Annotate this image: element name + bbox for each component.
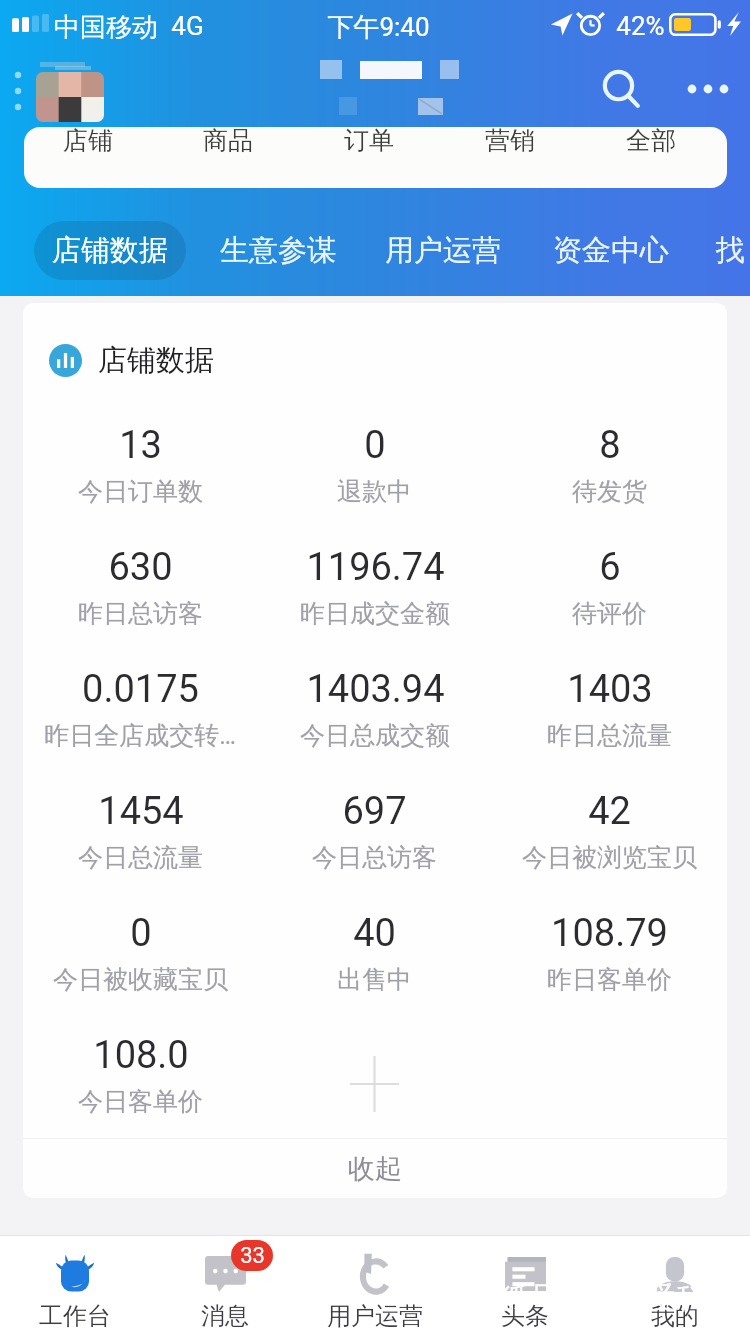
button[interactable]: 1454 <box>23 789 257 910</box>
staticText: 今日总访客 <box>312 842 437 873</box>
staticText: 搜狐号@思阳爱科技 <box>469 1279 736 1317</box>
staticText: 昨日成交金额 <box>300 598 450 629</box>
button[interactable]: 营销 <box>439 127 580 188</box>
staticText: 8 <box>599 423 621 468</box>
staticText: 42% <box>616 11 665 41</box>
button[interactable]: 店铺数据 <box>34 221 186 280</box>
button[interactable]: 40 <box>257 911 492 1032</box>
staticText: 营销 <box>485 127 535 156</box>
staticText: 42 <box>588 789 631 834</box>
staticText: 订单 <box>344 127 394 156</box>
staticText: 1454 <box>98 789 184 834</box>
staticText: 40 <box>353 911 396 956</box>
staticText: 商品 <box>203 127 253 156</box>
staticText: 用户运营 <box>385 232 501 269</box>
staticText: 今日被浏览宝贝 <box>522 842 697 873</box>
staticText: 昨日总流量 <box>547 720 672 751</box>
button[interactable]: 0 <box>257 423 492 544</box>
button[interactable]: 697 <box>257 789 492 910</box>
button[interactable]: 42 <box>492 789 727 910</box>
button[interactable]: 店铺数据 <box>49 340 214 380</box>
button[interactable]: 1403.94 <box>257 667 492 788</box>
staticText: 店铺 <box>63 127 113 156</box>
button[interactable]: 用户运营 <box>300 1236 450 1334</box>
button[interactable] <box>257 1033 492 1154</box>
button[interactable]: 店铺 <box>24 127 158 188</box>
staticText: 下午9:40 <box>327 11 430 44</box>
staticText: 待评价 <box>572 598 647 629</box>
staticText: 用户运营 <box>327 1301 423 1331</box>
button[interactable]: More options <box>676 59 736 119</box>
staticText: 6 <box>599 545 621 590</box>
button[interactable]: 收起 <box>23 1139 727 1198</box>
staticText: 1196.74 <box>306 545 445 590</box>
button[interactable]: Search <box>590 58 654 122</box>
staticText: 消息 <box>201 1301 249 1331</box>
staticText: 1403.94 <box>306 667 445 712</box>
staticText: 昨日全店成交转… <box>44 720 236 751</box>
staticText: 108.0 <box>93 1033 189 1078</box>
staticText: 中国移动 <box>54 11 158 44</box>
staticText: 资金中心 <box>553 232 669 269</box>
button[interactable]: Shop avatar <box>36 72 104 122</box>
staticText: 1403 <box>567 667 653 712</box>
staticText: 我的 <box>651 1301 699 1331</box>
button[interactable]: 找 <box>716 221 750 280</box>
staticText: 108.79 <box>551 911 668 956</box>
staticText: 4G <box>171 11 204 41</box>
staticText: 13 <box>119 423 162 468</box>
button[interactable]: 0.0175 <box>23 667 257 788</box>
staticText: 找 <box>716 232 745 269</box>
staticText: 收起 <box>348 1152 402 1186</box>
staticText: 33 <box>240 1243 265 1269</box>
staticText: 697 <box>342 789 407 834</box>
staticText: 出售中 <box>337 964 412 995</box>
staticText: 昨日客单价 <box>547 964 672 995</box>
staticText: 待发货 <box>572 476 647 507</box>
staticText: 工作台 <box>39 1301 111 1331</box>
button[interactable]: 1403 <box>492 667 727 788</box>
button[interactable]: 全部 <box>580 127 721 188</box>
staticText: 今日订单数 <box>78 476 203 507</box>
staticText: 生意参谋 <box>220 232 336 269</box>
staticText: 今日总成交额 <box>300 720 450 751</box>
staticText: 630 <box>108 545 173 590</box>
button[interactable]: 108.79 <box>492 911 727 1032</box>
staticText: 0.0175 <box>82 667 199 712</box>
staticText: 店铺数据 <box>98 342 214 379</box>
button[interactable]: 用户运营 <box>375 221 511 280</box>
button[interactable]: 头条 <box>450 1236 600 1334</box>
button[interactable]: 108.0 <box>23 1033 257 1154</box>
button[interactable]: 订单 <box>298 127 439 188</box>
button[interactable]: 工作台 <box>0 1236 150 1334</box>
button[interactable]: 商品 <box>158 127 298 188</box>
button[interactable]: 630 <box>23 545 257 666</box>
staticText: 今日总流量 <box>78 842 203 873</box>
staticText: 头条 <box>501 1301 549 1331</box>
button[interactable]: 生意参谋 <box>210 221 346 280</box>
staticText: 退款中 <box>337 476 412 507</box>
staticText: 0 <box>364 423 386 468</box>
staticText: 店铺数据 <box>52 232 168 269</box>
button[interactable]: 0 <box>23 911 257 1032</box>
staticText: 0 <box>130 911 152 956</box>
staticText: 今日被收藏宝贝 <box>53 964 228 995</box>
button[interactable]: 6 <box>492 545 727 666</box>
button[interactable]: 33 <box>150 1236 300 1334</box>
button[interactable]: 1196.74 <box>257 545 492 666</box>
button[interactable]: 资金中心 <box>543 221 679 280</box>
staticText: 昨日总访客 <box>78 598 203 629</box>
staticText: 今日客单价 <box>78 1086 203 1117</box>
staticText: 全部 <box>626 127 676 156</box>
button[interactable]: 我的 <box>600 1236 750 1334</box>
button[interactable]: 8 <box>492 423 727 544</box>
button[interactable]: 13 <box>23 423 257 544</box>
